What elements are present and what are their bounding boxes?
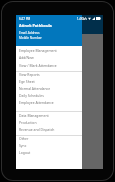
button[interactable]: Data Management [16, 112, 82, 119]
staticText: Logout [19, 150, 31, 155]
staticText: Revenue and Dispatch [19, 127, 55, 132]
staticText: Employee Management [19, 48, 57, 53]
button[interactable]: Employee Management [16, 47, 82, 54]
staticText: Add/New [19, 55, 34, 60]
staticText: Normal Attendance [19, 86, 51, 91]
staticText: Email Address [19, 31, 40, 35]
staticText: View Reports [19, 72, 40, 77]
staticText: Ege Sheet [19, 79, 35, 84]
staticText: Mobile Number [19, 36, 42, 40]
staticText: Data Management [19, 113, 49, 118]
button[interactable]: Employee Attendance [16, 99, 82, 106]
staticText: 6:27 PM [19, 17, 31, 21]
button[interactable]: View Reports [16, 71, 82, 78]
staticText: Atinek Pathkoula [19, 23, 52, 28]
button[interactable]: Production [16, 119, 82, 126]
button[interactable]: Daily Schedules [16, 92, 82, 99]
staticText: 1.4Kb/s [77, 17, 87, 21]
button[interactable]: Sync [16, 142, 82, 149]
staticText: Daily Schedules [19, 93, 44, 98]
button[interactable]: Other [16, 135, 82, 142]
button[interactable]: Normal Attendance [16, 85, 82, 92]
button[interactable]: Revenue and Dispatch [16, 126, 82, 133]
staticText: Production [19, 120, 37, 125]
staticText: Other [19, 136, 29, 141]
staticText: Employee Attendance [19, 100, 54, 105]
button[interactable]: Add/New [16, 54, 82, 61]
button[interactable]: Ege Sheet [16, 78, 82, 85]
staticText: Sync [19, 143, 27, 148]
button[interactable]: View / Mark Attendance [16, 62, 82, 69]
staticText: View / Mark Attendance [19, 63, 57, 68]
button[interactable]: Logout [16, 149, 82, 156]
